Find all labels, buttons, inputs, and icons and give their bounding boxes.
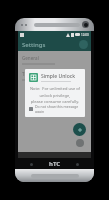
- staticText: Note: For unlimited use of unlock privil…: [29, 86, 81, 104]
- staticText: General: [22, 55, 39, 61]
- staticText: 12:00: [81, 33, 89, 37]
- button[interactable]: Account: [79, 40, 88, 49]
- button[interactable]: Add: [73, 123, 86, 136]
- staticText: Timeline: [22, 71, 41, 77]
- staticText: Do not show this message again: [35, 104, 81, 113]
- button[interactable]: Do not show this message again: [29, 104, 81, 113]
- button[interactable]: More: [76, 139, 84, 147]
- staticText: hTC: [49, 160, 61, 168]
- staticText: Simple Unlock: [41, 73, 75, 80]
- button[interactable]: General: [18, 55, 91, 65]
- button[interactable]: Timeline: [18, 71, 91, 81]
- staticText: Settings: [22, 41, 46, 49]
